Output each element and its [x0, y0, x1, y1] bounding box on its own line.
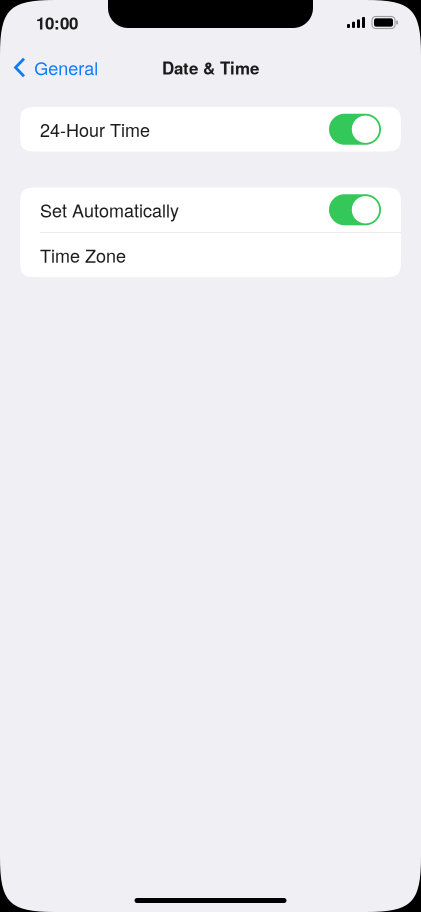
- staticText: Set Automatically: [40, 197, 179, 223]
- staticText: 24-Hour Time: [40, 116, 150, 142]
- button[interactable]: 24-Hour Time: [20, 107, 401, 151]
- staticText: General: [34, 55, 98, 80]
- staticText: 10:00: [36, 10, 78, 35]
- button[interactable]: General: [0, 49, 98, 86]
- button[interactable]: Set Automatically: [20, 187, 401, 232]
- staticText: Time Zone: [40, 242, 126, 268]
- staticText: Date & Time: [162, 55, 259, 80]
- button[interactable]: Time Zone: [20, 233, 401, 277]
